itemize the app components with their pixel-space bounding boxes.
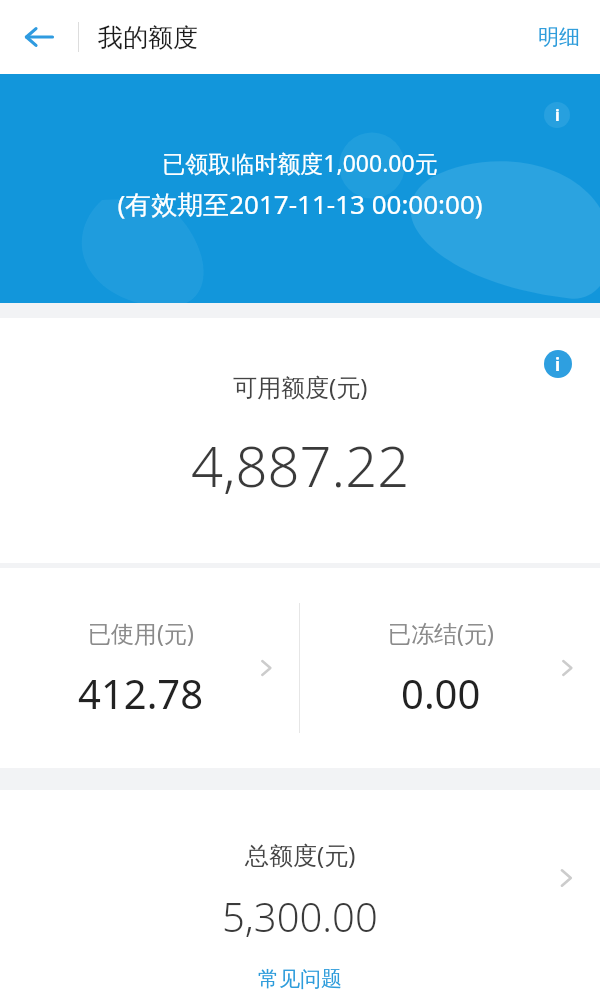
button[interactable]: 已使用(元) bbox=[0, 568, 299, 768]
button[interactable]: 已冻结(元) bbox=[300, 568, 600, 768]
staticText: 已使用(元) bbox=[88, 617, 194, 648]
staticText: 4,887.22 bbox=[191, 427, 410, 503]
staticText: 0.00 bbox=[401, 666, 481, 720]
staticText: 5,300.00 bbox=[222, 889, 378, 943]
staticText: 明细 bbox=[538, 24, 580, 50]
button[interactable]: Temporary credit info bbox=[540, 98, 574, 132]
button[interactable]: 明细 bbox=[518, 10, 600, 64]
staticText: 常见问题 bbox=[258, 966, 342, 992]
staticText: 可用额度(元) bbox=[233, 370, 368, 403]
button[interactable]: Back bbox=[8, 6, 70, 68]
staticText: 已领取临时额度1,000.00元 bbox=[162, 147, 438, 178]
staticText: i bbox=[555, 353, 561, 376]
staticText: 总额度(元) bbox=[245, 838, 356, 871]
staticText: (有效期至2017-11-13 00:00:00) bbox=[117, 186, 483, 222]
staticText: i bbox=[555, 104, 560, 126]
button[interactable]: Available credit info bbox=[540, 346, 576, 382]
staticText: 412.78 bbox=[78, 666, 204, 720]
staticText: 已冻结(元) bbox=[388, 617, 494, 648]
button[interactable]: 总额度(元) bbox=[0, 790, 600, 950]
button[interactable]: 常见问题 bbox=[240, 960, 360, 998]
staticText: 我的额度 bbox=[98, 22, 198, 53]
